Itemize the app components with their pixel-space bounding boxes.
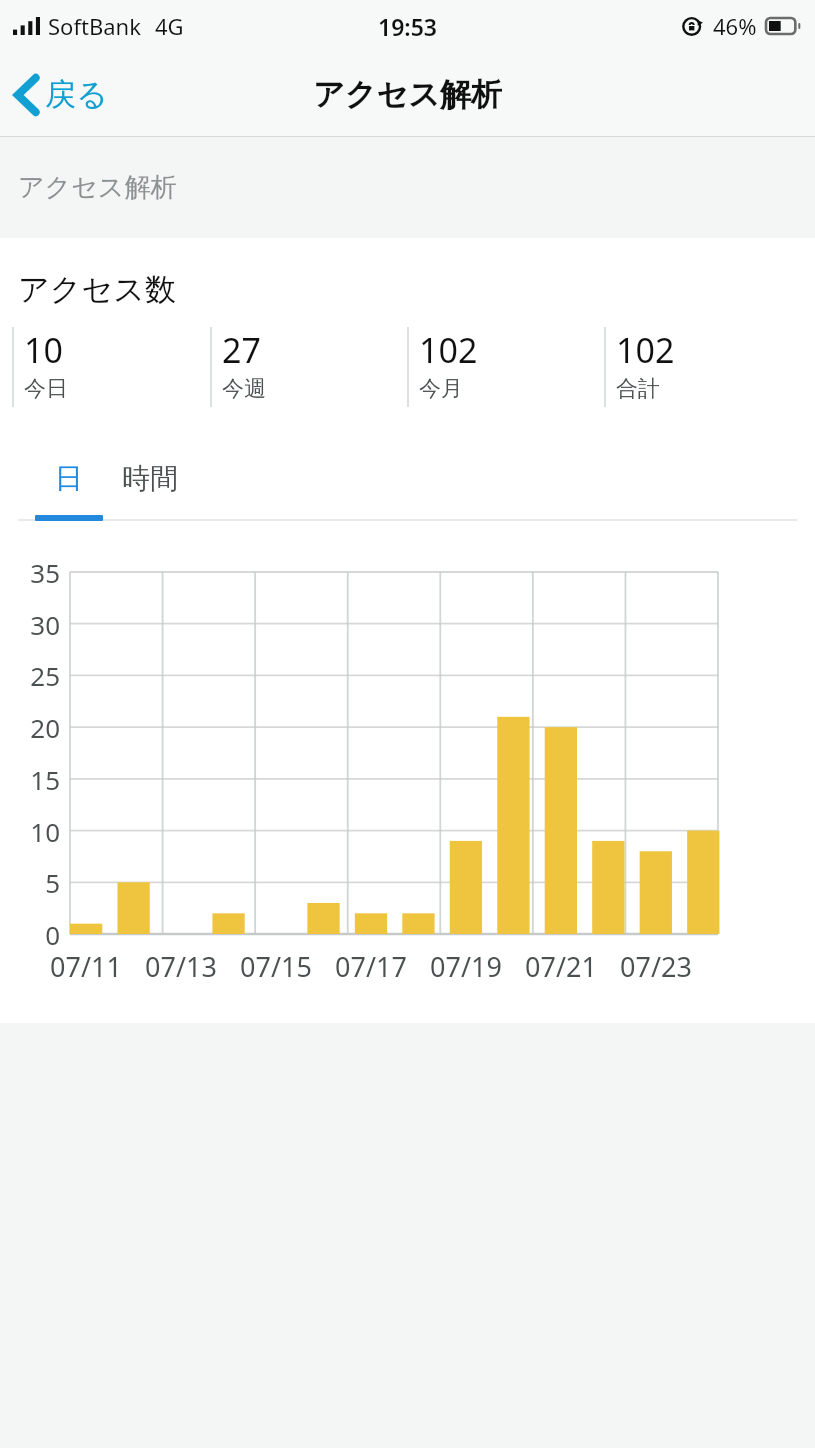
staticText: アクセス解析 — [18, 171, 177, 204]
button[interactable]: 27 — [210, 327, 407, 407]
staticText: 今月 — [419, 375, 463, 403]
other: Daily access bar chart — [0, 556, 815, 986]
staticText: 10 — [4, 814, 60, 849]
staticText: 30 — [4, 607, 60, 642]
staticText: 27 — [222, 327, 261, 373]
staticText: 15 — [4, 762, 60, 797]
staticText: 102 — [616, 327, 675, 373]
staticText: 19:53 — [378, 11, 437, 42]
staticText: 今週 — [222, 375, 266, 403]
staticText: 07/17 — [323, 948, 419, 985]
staticText: 時間 — [122, 461, 178, 496]
staticText: 35 — [4, 555, 60, 590]
button[interactable]: 日 — [35, 449, 103, 521]
staticText: 5 — [4, 865, 60, 900]
staticText: 戻る — [45, 75, 108, 114]
staticText: 07/21 — [513, 948, 609, 985]
button[interactable]: 102 — [407, 327, 604, 407]
staticText: アクセス数 — [18, 270, 176, 309]
button[interactable]: 戻る — [0, 52, 124, 137]
staticText: 07/19 — [418, 948, 514, 985]
staticText: 25 — [4, 658, 60, 693]
staticText: 日 — [55, 461, 83, 496]
staticText: 今日 — [24, 375, 68, 403]
staticText: 合計 — [616, 375, 660, 403]
staticText: 07/15 — [228, 948, 324, 985]
staticText: SoftBank — [48, 11, 141, 41]
staticText: 102 — [419, 327, 478, 373]
button[interactable]: 102 — [604, 327, 801, 407]
staticText: 20 — [4, 710, 60, 745]
staticText: 4G — [155, 11, 184, 41]
staticText: 07/23 — [608, 948, 704, 985]
staticText: 07/11 — [38, 948, 134, 985]
staticText: 07/13 — [133, 948, 229, 985]
staticText: 46% — [713, 11, 757, 41]
button[interactable]: 10 — [12, 327, 210, 407]
staticText: 0 — [4, 917, 60, 952]
staticText: 10 — [24, 327, 63, 373]
button[interactable]: 時間 — [103, 449, 197, 521]
staticText: アクセス解析 — [313, 75, 502, 114]
